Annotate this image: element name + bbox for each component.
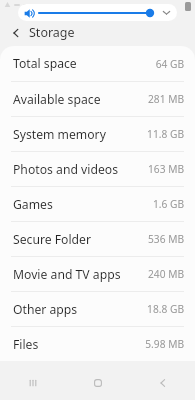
staticText: System memory bbox=[13, 126, 106, 143]
staticText: Games bbox=[13, 196, 53, 213]
staticText: Photos and videos bbox=[13, 161, 119, 178]
button[interactable]: Recent apps bbox=[0, 366, 65, 400]
button[interactable]: Secure Folder bbox=[0, 222, 195, 256]
staticText: 240 MB bbox=[148, 267, 184, 281]
button[interactable]: Photos and videos bbox=[0, 152, 195, 186]
staticText: Storage bbox=[29, 24, 75, 41]
button[interactable]: Available space bbox=[0, 82, 195, 116]
staticText: Available space bbox=[13, 91, 101, 108]
button[interactable]: Navigate up bbox=[8, 25, 24, 41]
staticText: 11.8 GB bbox=[147, 127, 184, 141]
button[interactable]: Volume bbox=[18, 4, 177, 21]
button[interactable]: Files bbox=[0, 327, 195, 361]
staticText: 64 GB bbox=[155, 57, 184, 71]
staticText: Other apps bbox=[13, 301, 78, 318]
staticText: Files bbox=[13, 336, 39, 353]
staticText: 281 MB bbox=[148, 92, 184, 106]
button[interactable]: Back bbox=[130, 366, 195, 400]
staticText: 18.8 GB bbox=[147, 302, 184, 316]
staticText: 1.6 GB bbox=[152, 197, 184, 211]
button[interactable]: Total space bbox=[0, 46, 195, 81]
button[interactable] bbox=[39, 6, 156, 20]
staticText: Total space bbox=[13, 55, 77, 72]
button[interactable]: Home bbox=[65, 366, 130, 400]
staticText: 163 MB bbox=[148, 162, 184, 176]
button[interactable]: Volume bbox=[22, 6, 36, 20]
button[interactable]: Expand volume controls bbox=[160, 6, 173, 19]
button[interactable]: System memory bbox=[0, 117, 195, 151]
staticText: Movie and TV apps bbox=[13, 266, 121, 283]
staticText: Secure Folder bbox=[13, 231, 92, 248]
button[interactable]: Movie and TV apps bbox=[0, 257, 195, 291]
button[interactable]: Other apps bbox=[0, 292, 195, 326]
staticText: 536 MB bbox=[148, 232, 184, 246]
staticText: 5.98 MB bbox=[145, 337, 184, 351]
button[interactable]: Games bbox=[0, 187, 195, 221]
